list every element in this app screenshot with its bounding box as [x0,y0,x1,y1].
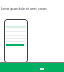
button[interactable]: Bottom navigation [0,63,64,72]
button[interactable] [4,19,28,63]
staticText: Lorem ipsum dolor sit amet, consec [1,7,47,11]
